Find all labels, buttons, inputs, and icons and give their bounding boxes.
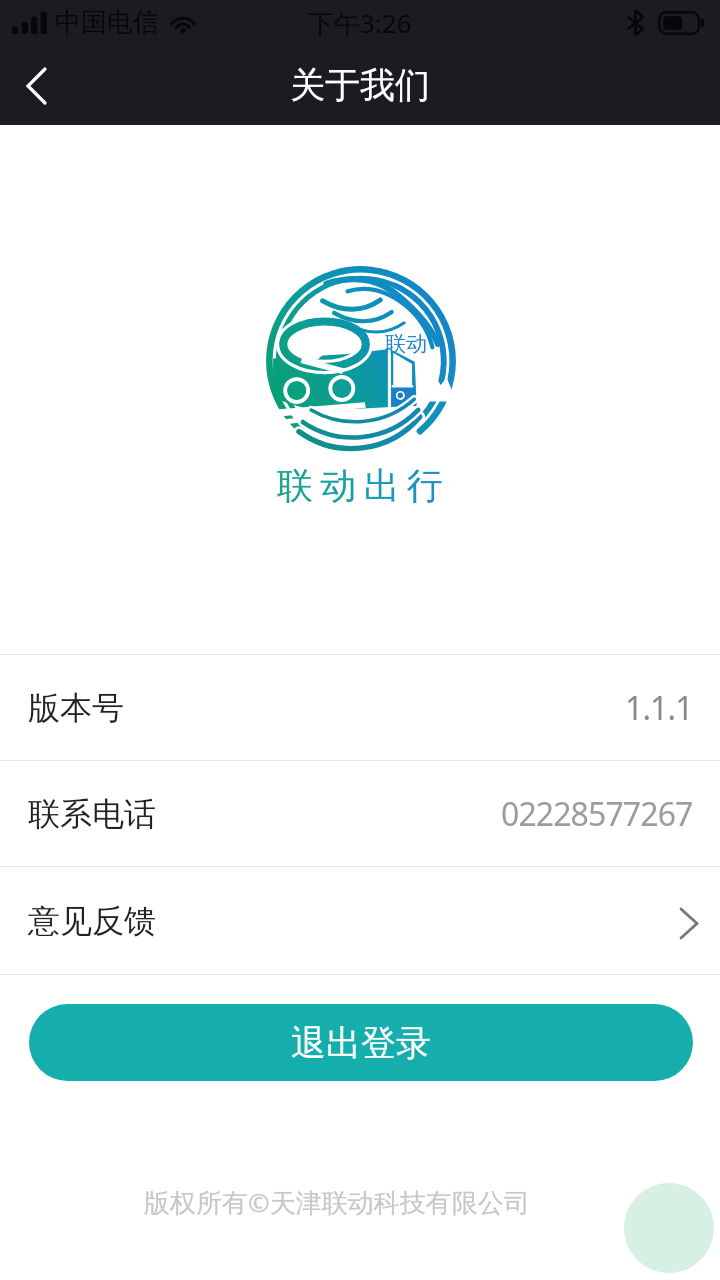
staticText: 版权所有©天津联动科技有限公司 <box>144 1184 530 1220</box>
staticText: 1.1.1 <box>625 686 693 730</box>
staticText: 02228577267 <box>501 792 693 836</box>
staticText: 下午3:26 <box>308 5 412 41</box>
button[interactable]: 联系电话 <box>0 761 720 866</box>
button[interactable]: 意见反馈 <box>0 867 720 974</box>
button[interactable]: 退出登录 <box>29 1004 693 1081</box>
staticText: 关于我们 <box>290 63 430 107</box>
staticText: 版本号 <box>28 688 124 728</box>
staticText: 意见反馈 <box>28 901 156 941</box>
staticText: 联动 <box>385 331 427 357</box>
staticText: 退出登录 <box>291 1021 431 1065</box>
staticText: 联系电话 <box>28 794 156 834</box>
button[interactable]: Back <box>0 49 73 122</box>
staticText: 中国电信 <box>55 6 159 39</box>
button[interactable]: 版本号 <box>0 655 720 760</box>
staticText: 联 动 出 行 <box>277 460 443 509</box>
